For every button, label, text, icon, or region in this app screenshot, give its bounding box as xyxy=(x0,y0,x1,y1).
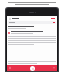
button[interactable] xyxy=(7,25,57,30)
button[interactable]: Add xyxy=(30,66,35,71)
button[interactable] xyxy=(8,21,56,24)
button[interactable] xyxy=(7,30,57,35)
button[interactable]: Save xyxy=(50,17,56,20)
button[interactable]: Menu xyxy=(8,17,11,20)
button[interactable]: Profile xyxy=(53,67,55,69)
